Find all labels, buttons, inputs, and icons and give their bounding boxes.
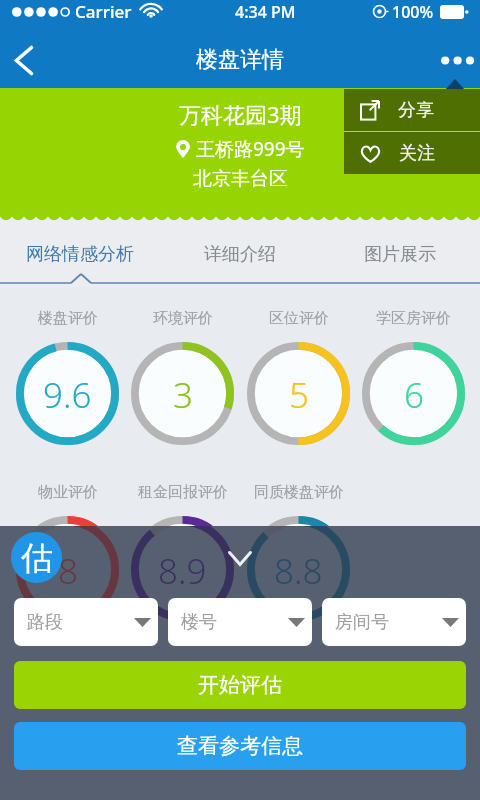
button[interactable]: 关注	[344, 132, 480, 174]
button[interactable]: 详细介绍	[160, 221, 320, 269]
button[interactable]: 分享	[344, 89, 480, 131]
staticText: 万科花园3期	[179, 99, 302, 129]
staticText: 楼号	[181, 611, 217, 634]
staticText: 8	[58, 545, 78, 593]
staticText: 详细介绍	[204, 243, 276, 266]
staticText: 物业评价	[38, 483, 98, 502]
staticText: 区位评价	[269, 309, 329, 328]
staticText: 8.9	[158, 547, 207, 595]
staticText: 8	[58, 547, 78, 595]
button[interactable]: 查看参考信息	[14, 722, 466, 770]
staticText: 100%	[392, 1, 434, 23]
staticText: Carrier	[75, 0, 132, 23]
staticText: 租金回报评价	[138, 483, 228, 502]
staticText: 开始评估	[198, 672, 282, 698]
staticText: 网络情感分析	[26, 243, 134, 266]
staticText: 8.8	[274, 547, 323, 595]
staticText: 8.8	[274, 545, 323, 593]
staticText: 同质楼盘评价	[254, 483, 344, 502]
staticText: 路段	[27, 611, 63, 634]
button[interactable]: 估	[11, 532, 62, 583]
button[interactable]: 图片展示	[320, 221, 480, 269]
button[interactable]: 房间号	[322, 598, 466, 646]
staticText: 王桥路999号	[196, 136, 305, 162]
button[interactable]: 楼号	[168, 598, 312, 646]
staticText: 图片展示	[364, 243, 436, 266]
button[interactable]: 开始评估	[14, 661, 466, 709]
staticText: 学区房评价	[376, 309, 451, 328]
staticText: 估	[21, 538, 53, 578]
staticText: 楼盘详情	[196, 46, 284, 74]
staticText: 北京丰台区	[193, 167, 288, 191]
staticText: 6	[404, 371, 424, 419]
staticText: 环境评价	[153, 309, 213, 328]
staticText: 分享	[398, 99, 434, 122]
staticText: 楼盘评价	[38, 309, 98, 328]
button[interactable]: More options	[430, 32, 480, 88]
button[interactable]: Back	[0, 32, 47, 88]
staticText: 查看参考信息	[177, 733, 303, 759]
staticText: 5	[289, 371, 309, 419]
staticText: 3	[173, 371, 193, 419]
staticText: 4:34 PM	[235, 1, 296, 23]
staticText: 关注	[399, 142, 435, 165]
button[interactable]: 路段	[14, 598, 158, 646]
staticText: 9.6	[43, 371, 92, 419]
button[interactable]: 网络情感分析	[0, 221, 160, 269]
staticText: 房间号	[335, 611, 389, 634]
staticText: 8.9	[158, 545, 207, 593]
